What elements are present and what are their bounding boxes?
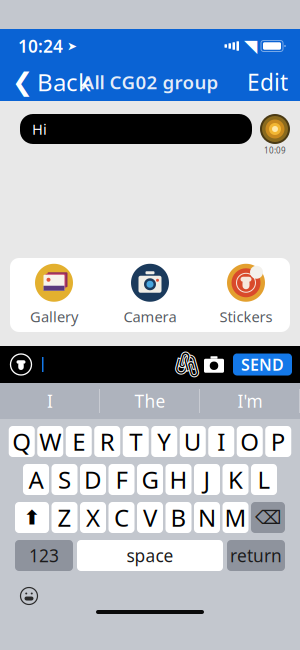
button[interactable]: Camera — [106, 264, 194, 326]
staticText: SEND — [241, 354, 284, 375]
staticText: Stickers — [219, 307, 272, 326]
button[interactable]: 123 — [15, 540, 73, 571]
button[interactable]: SEND — [233, 353, 292, 375]
staticText: return — [230, 544, 282, 567]
button[interactable]: space — [77, 540, 223, 571]
staticText: L — [257, 464, 270, 495]
button[interactable]: Gallery — [10, 264, 98, 326]
button[interactable]: S — [51, 464, 77, 495]
staticText: The — [134, 389, 165, 412]
staticText: J — [203, 464, 210, 495]
staticText: space — [126, 544, 173, 567]
button[interactable]: L — [251, 464, 277, 495]
staticText: 10:24 — [18, 34, 63, 57]
staticText: Z — [57, 502, 71, 533]
button[interactable]: I — [208, 426, 234, 457]
button[interactable]: H — [165, 464, 191, 495]
staticText: Q — [12, 426, 31, 457]
staticText: V — [143, 502, 157, 533]
staticText: G — [141, 464, 158, 495]
button[interactable]: F — [108, 464, 134, 495]
staticText: 🖇 — [171, 350, 203, 379]
button[interactable]: U — [180, 426, 206, 457]
staticText: P — [271, 426, 286, 457]
staticText: ◥ — [244, 36, 257, 56]
button[interactable]: ❮ — [0, 63, 103, 101]
button[interactable]: Attach file — [174, 349, 200, 379]
button[interactable]: E — [66, 426, 92, 457]
button[interactable]: G — [137, 464, 163, 495]
staticText: 123 — [29, 544, 59, 567]
staticText: T — [129, 426, 142, 457]
staticText: D — [84, 464, 102, 495]
staticText: H — [169, 464, 187, 495]
button[interactable]: I — [0, 383, 100, 419]
staticText: ⌫ — [255, 507, 281, 528]
staticText: E — [72, 426, 85, 457]
button[interactable]: W — [37, 426, 63, 457]
button[interactable]: C — [108, 502, 134, 533]
button[interactable]: Stickers — [202, 264, 290, 326]
staticText: ⬆ — [23, 506, 40, 529]
button[interactable]: I'm — [200, 383, 300, 419]
button[interactable]: Camera — [200, 349, 228, 379]
staticText: ➤ — [63, 39, 77, 53]
staticText: M — [224, 502, 246, 533]
staticText: A — [28, 464, 43, 495]
button[interactable]: Y — [151, 426, 177, 457]
staticText: Gallery — [30, 307, 78, 326]
button[interactable]: Edit — [235, 63, 300, 101]
staticText: W — [39, 426, 61, 457]
button[interactable]: M — [222, 502, 248, 533]
button[interactable]: return — [227, 540, 285, 571]
button[interactable]: V — [137, 502, 163, 533]
staticText: Y — [157, 426, 171, 457]
button[interactable]: The — [100, 383, 200, 419]
button[interactable]: Emoji — [16, 583, 42, 609]
staticText: I — [217, 426, 225, 457]
staticText: U — [184, 426, 202, 457]
button[interactable]: R — [94, 426, 120, 457]
button[interactable]: T — [123, 426, 149, 457]
button[interactable]: D — [80, 464, 106, 495]
button[interactable]: X — [80, 502, 106, 533]
button[interactable]: J — [194, 464, 220, 495]
button[interactable]: Z — [51, 502, 77, 533]
staticText: I'm — [237, 389, 262, 412]
button[interactable]: A — [23, 464, 49, 495]
staticText: Back — [37, 66, 91, 98]
staticText: O — [240, 426, 259, 457]
staticText: N — [198, 502, 216, 533]
button[interactable]: Profile — [8, 351, 34, 377]
staticText: Hi — [32, 119, 47, 139]
staticText: ❮ — [12, 68, 33, 96]
staticText: I — [47, 389, 53, 412]
staticText: Camera — [123, 307, 176, 326]
button[interactable]: Shift — [15, 502, 49, 533]
button[interactable]: B — [165, 502, 191, 533]
button[interactable]: Delete — [251, 502, 285, 533]
staticText: C — [114, 502, 129, 533]
staticText: R — [100, 426, 115, 457]
staticText: X — [86, 502, 100, 533]
staticText: K — [228, 464, 243, 495]
staticText: Edit — [247, 67, 288, 97]
staticText: All CG02 group — [81, 70, 218, 94]
staticText: F — [115, 464, 127, 495]
button[interactable]: K — [222, 464, 248, 495]
staticText: B — [170, 502, 186, 533]
button[interactable]: Q — [9, 426, 35, 457]
button[interactable]: N — [194, 502, 220, 533]
staticText: S — [58, 464, 71, 495]
staticText: 10:09 — [264, 145, 286, 156]
button[interactable]: P — [265, 426, 291, 457]
button[interactable]: O — [237, 426, 263, 457]
